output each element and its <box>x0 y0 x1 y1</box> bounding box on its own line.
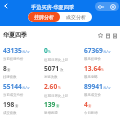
staticText: 挂牌套数 <box>3 75 17 79</box>
button[interactable]: Settings <box>107 2 119 11</box>
staticText: 套 <box>88 104 92 108</box>
staticText: 最高挂牌价 <box>84 57 101 61</box>
staticText: 5071 <box>44 64 60 73</box>
button[interactable]: 挂牌分析 <box>28 12 60 22</box>
staticText: 2.60 <box>44 82 58 91</box>
staticText: 元/㎡ <box>103 49 112 54</box>
button[interactable]: Filter <box>95 2 107 11</box>
staticText: 手边买房-华夏四季 <box>31 3 75 10</box>
staticText: 当前挂牌均价 <box>3 57 24 61</box>
staticText: 近30日环比上月 <box>44 93 69 98</box>
staticText: 元/㎡ <box>22 49 31 54</box>
button[interactable]: Share <box>111 32 118 39</box>
staticText: 89941 <box>84 82 103 91</box>
staticText: 成交分析 <box>66 14 86 20</box>
button[interactable]: Report <box>104 32 111 39</box>
staticText: 67369 <box>84 46 103 55</box>
staticText: 套 <box>15 104 19 108</box>
button[interactable]: 2.60 <box>44 82 84 98</box>
button[interactable]: 139 <box>44 100 84 115</box>
button[interactable]: 0 <box>44 46 84 62</box>
button[interactable]: 67369 <box>84 46 120 61</box>
staticText: 139 <box>44 100 56 109</box>
staticText: 198 <box>3 100 15 109</box>
button[interactable]: Favorite <box>97 32 104 39</box>
staticText: 今日新增 <box>84 111 98 115</box>
staticText: % <box>101 67 104 72</box>
button[interactable]: 4 <box>84 100 120 115</box>
staticText: 0 <box>44 46 48 55</box>
staticText: 成交套数 <box>3 111 17 115</box>
button[interactable]: 5071 <box>44 64 84 79</box>
staticText: 最高成交价 <box>84 93 101 97</box>
button[interactable]: Back <box>0 0 12 12</box>
button[interactable]: 55144 <box>3 82 44 97</box>
staticText: 近30日环比上月 <box>44 57 69 62</box>
staticText: 最高涨幅 <box>84 75 98 79</box>
staticText: 元/㎡ <box>22 85 31 90</box>
staticText: 43135 <box>3 46 22 55</box>
button[interactable]: 8 <box>3 64 44 79</box>
staticText: 元/㎡ <box>103 85 112 90</box>
button[interactable]: 89941 <box>84 82 120 97</box>
staticText: 华夏四季 <box>3 31 27 39</box>
staticText: 13.64 <box>84 64 101 73</box>
staticText: 浏览次数 <box>44 75 58 79</box>
staticText: 8 <box>3 64 7 73</box>
staticText: 新增房源 <box>44 111 58 115</box>
button[interactable]: 43135 <box>3 46 44 61</box>
button[interactable]: 成交分析 <box>60 12 92 22</box>
button[interactable]: 13.64 <box>84 64 120 79</box>
staticText: 挂牌分析 <box>34 14 54 20</box>
staticText: 套 <box>7 68 11 72</box>
staticText: 55144 <box>3 82 22 91</box>
staticText: 套 <box>56 104 60 108</box>
staticText: 4 <box>84 100 88 109</box>
staticText: % <box>58 85 61 90</box>
staticText: 当前成交均价 <box>3 93 24 97</box>
button[interactable]: 198 <box>3 100 44 115</box>
staticText: 次 <box>60 68 64 72</box>
staticText: % <box>48 49 51 54</box>
